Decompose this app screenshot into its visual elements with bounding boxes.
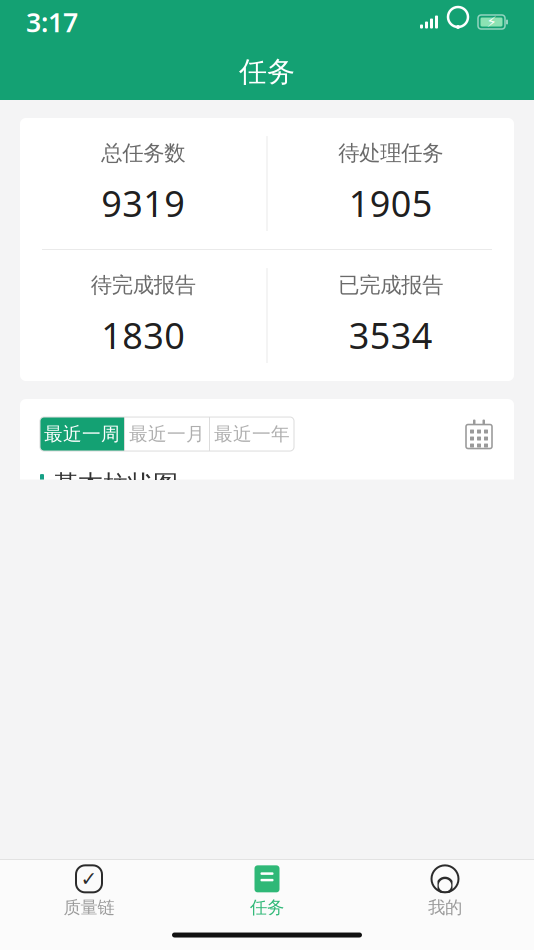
staticText: 任务 — [239, 55, 295, 89]
button[interactable]: 任务 — [178, 856, 356, 924]
staticText: 待完成报告 — [91, 272, 196, 298]
staticText: 总任务数 — [101, 140, 185, 166]
staticText: 已完成报告 — [338, 272, 443, 298]
staticText: ⚡︎ — [486, 14, 496, 30]
staticText: 基本柱状图 — [53, 469, 178, 500]
staticText: 质量链 — [63, 897, 114, 918]
staticText: 1905 — [349, 179, 433, 227]
staticText: 任务 — [250, 897, 284, 918]
staticText: ✓ — [80, 867, 97, 890]
button[interactable]: 最近一年 — [210, 417, 294, 451]
staticText: 3:17 — [26, 4, 78, 40]
button[interactable]: 选择日期 — [464, 419, 494, 449]
staticText: 9319 — [101, 179, 185, 227]
staticText: 1830 — [101, 311, 185, 359]
button[interactable]: 最近一周 — [40, 417, 124, 451]
staticText: 待处理任务 — [338, 140, 443, 166]
staticText: 最近一月 — [129, 423, 205, 445]
staticText: 3534 — [349, 311, 433, 359]
staticText: 最近一年 — [214, 423, 290, 445]
button[interactable]: ✓ — [0, 856, 178, 924]
button[interactable]: 最近一月 — [125, 417, 209, 451]
staticText: 我的 — [428, 897, 462, 918]
button[interactable]: 我的 — [356, 856, 534, 924]
staticText: 最近一周 — [44, 423, 120, 445]
